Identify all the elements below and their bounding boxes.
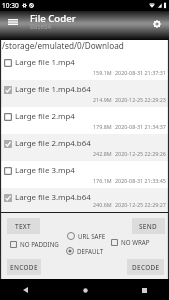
button[interactable]: Menu [2,11,24,33]
staticText: 2020-08-31 21:34:37 [115,123,166,130]
staticText: 10:30 [2,1,19,10]
staticText: Large file 1.mp4.b64 [15,84,91,95]
staticText: Large file 2.mp4.b64 [15,138,91,149]
staticText: ENCODE [10,263,38,272]
staticText: 240.6M [93,201,112,208]
staticText: 176.1M [93,177,112,184]
button[interactable]: Large file 2.mp4 [0,107,169,134]
staticText: 2020-08-31 21:33:45 [115,177,166,184]
button[interactable]: Large file 1.mp4.b64 [0,80,169,107]
button[interactable]: NO WRAP [111,238,150,246]
staticText: 2020-12-25 22:29:26 [115,150,166,157]
button[interactable]: DECODE [127,259,164,275]
staticText: Large file 3.mp4 [15,165,75,176]
button[interactable]: Recents [135,281,153,299]
staticText: 242.8M [93,150,112,157]
button[interactable]: SEND [132,218,165,234]
staticText: 2020-12-25 22:29:27 [115,201,166,208]
staticText: 214.9M [93,96,112,103]
staticText: 179.8M [93,123,112,130]
staticText: 2020-12-25 22:29:23 [115,96,166,103]
staticText: 159.1M [93,69,112,76]
staticText: File Coder [30,12,76,25]
button[interactable]: NO PADDING [10,240,59,248]
staticText: DEFAULT [77,247,104,255]
button[interactable]: Large file 2.mp4.b64 [0,134,169,161]
button[interactable]: Back [16,281,34,299]
button[interactable]: Large file 3.mp4 [0,161,169,188]
button[interactable]: TEXT [7,218,40,234]
staticText: Base64 [30,22,52,30]
staticText: SEND [139,222,158,231]
staticText: NO PADDING [20,240,59,248]
button[interactable]: URL SAFE [67,232,106,240]
staticText: URL SAFE [78,232,106,240]
button[interactable]: Large file 3.mp4.b64 [0,188,169,212]
button[interactable]: Large file 1.mp4 [0,53,169,80]
staticText: NO WRAP [121,238,150,246]
staticText: Large file 2.mp4 [15,111,75,122]
button[interactable]: Settings [146,13,168,35]
button[interactable]: DEFAULT [66,247,104,255]
staticText: 2020-08-31 21:37:31 [115,69,166,76]
button[interactable]: ENCODE [7,259,41,275]
staticText: Large file 3.mp4.b64 [15,192,91,203]
staticText: /storage/emulated/0/Download [2,40,124,51]
button[interactable]: Home [76,281,94,299]
staticText: Large file 1.mp4 [15,57,75,68]
staticText: TEXT [15,222,32,231]
staticText: DECODE [132,263,160,272]
